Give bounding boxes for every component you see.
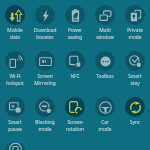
staticText: Blocking mode: [30, 119, 60, 133]
staticText: Screen rotation: [60, 119, 90, 133]
staticText: NFC: [60, 73, 90, 80]
staticText: Car mode: [90, 119, 120, 133]
button[interactable]: Mobile data: [0, 0, 30, 46]
staticText: Power saving: [60, 27, 90, 41]
button[interactable]: Power saving: [60, 0, 90, 46]
button[interactable]: Private mode: [120, 0, 150, 46]
button[interactable]: Airplane mode: [0, 138, 30, 150]
button[interactable]: Sync: [120, 92, 150, 138]
staticText: Smart stay: [120, 73, 150, 87]
staticText: Sync: [120, 119, 150, 126]
staticText: Mobile data: [0, 27, 30, 41]
button[interactable]: Smart pause: [0, 92, 30, 138]
staticText: Wi-Fi hotspot: [0, 73, 30, 87]
button[interactable]: Smart stay: [120, 46, 150, 92]
button[interactable]: Screen Mirroring: [30, 46, 60, 92]
button[interactable]: Wi-Fi hotspot: [0, 46, 30, 92]
staticText: Toolbox: [90, 73, 120, 80]
staticText: Multi window: [90, 27, 120, 41]
button[interactable]: Toolbox: [90, 46, 120, 92]
staticText: Smart pause: [0, 119, 30, 133]
button[interactable]: Screen rotation: [60, 92, 90, 138]
button[interactable]: Download booster: [30, 0, 60, 46]
button[interactable]: NFC: [60, 46, 90, 92]
button[interactable]: Blocking mode: [30, 92, 60, 138]
button[interactable]: Multi window: [90, 0, 120, 46]
button[interactable]: Car mode: [90, 92, 120, 138]
staticText: Private mode: [120, 27, 150, 41]
staticText: Download booster: [30, 27, 60, 41]
staticText: Screen Mirroring: [30, 73, 60, 87]
